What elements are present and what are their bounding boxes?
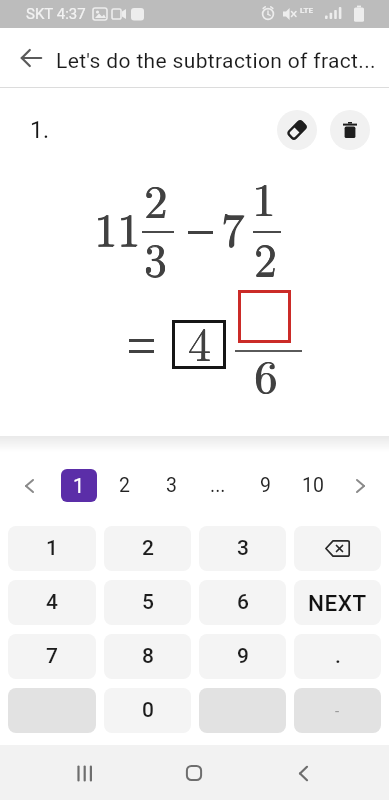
button[interactable]: 6 bbox=[199, 580, 286, 625]
button[interactable]: 5 bbox=[104, 580, 191, 625]
staticText: 11 bbox=[94, 195, 140, 260]
staticText: 8 bbox=[142, 644, 154, 669]
button[interactable] bbox=[65, 753, 105, 793]
staticText: 4 bbox=[46, 590, 58, 615]
button[interactable]: - bbox=[294, 688, 381, 733]
staticText: 1 bbox=[252, 164, 275, 229]
staticText: 2 bbox=[119, 474, 130, 497]
button[interactable]: 10 bbox=[295, 469, 331, 502]
button[interactable] bbox=[3, 30, 59, 86]
button[interactable] bbox=[342, 469, 378, 502]
staticText: 11 bbox=[95, 194, 141, 259]
button[interactable]: 9 bbox=[199, 634, 286, 679]
staticText: . bbox=[335, 644, 341, 669]
staticText: 7 bbox=[222, 194, 245, 259]
staticText: 5 bbox=[142, 590, 154, 615]
staticText: 2 bbox=[144, 166, 167, 231]
staticText: 7 bbox=[221, 194, 244, 259]
button[interactable] bbox=[277, 110, 317, 150]
staticText: 9 bbox=[260, 474, 271, 497]
staticText: 2 bbox=[254, 225, 277, 290]
button[interactable]: 0 bbox=[104, 688, 191, 733]
staticText: 1 bbox=[252, 164, 275, 229]
staticText: 1 bbox=[73, 474, 85, 497]
button[interactable] bbox=[8, 688, 96, 733]
button[interactable] bbox=[294, 526, 381, 571]
button[interactable]: NEXT bbox=[294, 580, 381, 625]
button[interactable] bbox=[199, 688, 286, 733]
button[interactable] bbox=[11, 469, 47, 502]
staticText: 3 bbox=[144, 224, 167, 289]
staticText: 2 bbox=[254, 224, 277, 289]
button[interactable]: 8 bbox=[104, 634, 191, 679]
staticText: 1. bbox=[30, 117, 49, 144]
button[interactable]: 1 bbox=[61, 469, 97, 502]
staticText: 3 bbox=[166, 474, 177, 497]
staticText: 4 bbox=[188, 309, 211, 374]
staticText: 4 bbox=[188, 309, 211, 374]
staticText: 11 bbox=[94, 194, 140, 259]
button[interactable]: 9 bbox=[247, 469, 283, 502]
staticText: SKT 4:37 bbox=[26, 5, 86, 23]
staticText: 3 bbox=[237, 536, 249, 561]
staticText: 2 bbox=[254, 224, 277, 289]
staticText: 1 bbox=[46, 536, 58, 561]
staticText: ... bbox=[210, 474, 226, 497]
staticText: 3 bbox=[144, 224, 167, 289]
button[interactable]: 3 bbox=[199, 526, 286, 571]
button[interactable] bbox=[238, 290, 291, 343]
staticText: 3 bbox=[144, 225, 167, 290]
staticText: - bbox=[335, 702, 340, 720]
staticText: 4 bbox=[188, 309, 211, 374]
staticText: 2 bbox=[145, 166, 168, 231]
staticText: 6 bbox=[237, 590, 249, 615]
button[interactable]: 4 bbox=[8, 580, 96, 625]
staticText: 1 bbox=[253, 164, 276, 229]
button[interactable]: ... bbox=[200, 469, 236, 502]
button[interactable]: 7 bbox=[8, 634, 96, 679]
staticText: 2 bbox=[142, 536, 154, 561]
staticText: Let's do the subtraction of fract... bbox=[56, 49, 376, 74]
staticText: 6 bbox=[254, 341, 277, 406]
staticText: 0 bbox=[142, 698, 154, 723]
button[interactable]: . bbox=[294, 634, 381, 679]
staticText: 7 bbox=[221, 195, 244, 260]
button[interactable] bbox=[330, 110, 370, 150]
staticText: 7 bbox=[46, 644, 58, 669]
staticText: 9 bbox=[237, 644, 249, 669]
button[interactable] bbox=[283, 753, 323, 793]
button[interactable]: 2 bbox=[104, 526, 191, 571]
staticText: NEXT bbox=[308, 590, 367, 616]
button[interactable] bbox=[174, 753, 214, 793]
button[interactable]: 2 bbox=[106, 469, 142, 502]
staticText: 6 bbox=[254, 341, 277, 406]
staticText: 10 bbox=[302, 474, 324, 497]
staticText: 6 bbox=[255, 341, 278, 406]
button[interactable]: 3 bbox=[153, 469, 189, 502]
button[interactable]: 1 bbox=[8, 526, 96, 571]
staticText: 2 bbox=[144, 166, 167, 231]
staticText: LTE bbox=[300, 6, 313, 15]
